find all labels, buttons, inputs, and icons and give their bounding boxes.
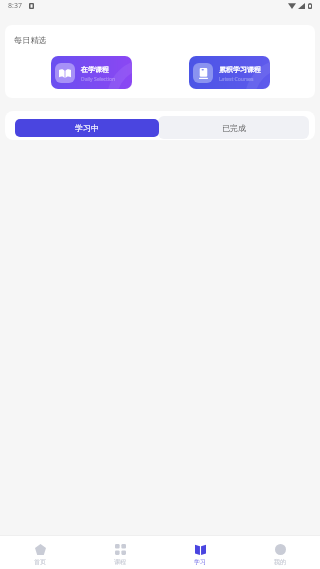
staticText: 学习	[194, 558, 206, 566]
staticText: 学习中	[75, 123, 99, 133]
button[interactable]: 学习中	[15, 119, 159, 137]
staticText: 首页	[34, 558, 46, 566]
staticText: 课程	[114, 558, 126, 566]
button[interactable]: 累积学习课程	[189, 56, 270, 89]
button[interactable]: 学习	[160, 540, 240, 566]
staticText: Latest Courses	[219, 76, 254, 83]
button[interactable]: 在学课程	[51, 56, 132, 89]
staticText: Daily Selection	[81, 76, 116, 83]
button[interactable]: 课程	[80, 540, 160, 566]
staticText: 在学课程	[81, 65, 109, 74]
staticText: 已完成	[222, 123, 246, 133]
button[interactable]: 首页	[0, 540, 80, 566]
button[interactable]: 已完成	[158, 116, 309, 139]
staticText: 8:37	[8, 1, 22, 11]
button[interactable]: 我的	[240, 540, 320, 566]
staticText: 我的	[274, 558, 286, 566]
staticText: 累积学习课程	[219, 65, 261, 74]
staticText: 每日精选	[14, 35, 47, 45]
